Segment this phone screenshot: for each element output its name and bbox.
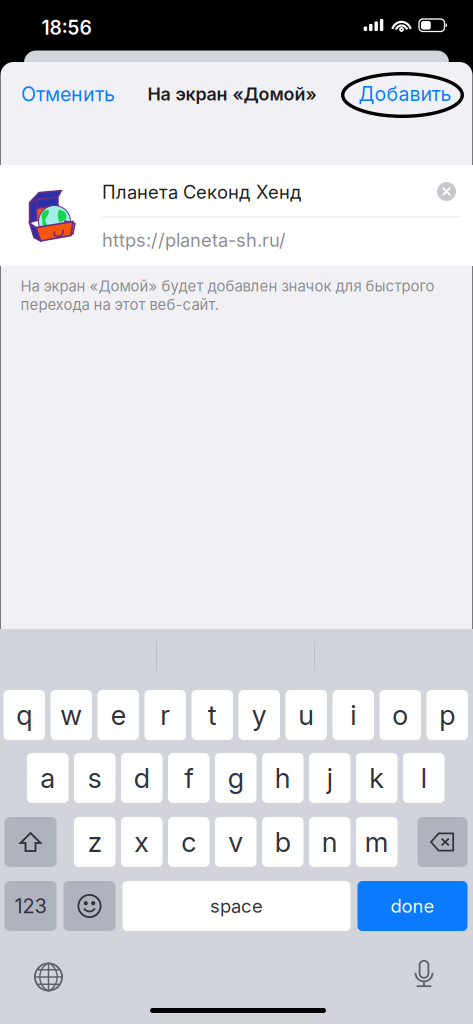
button[interactable]: 123 [4, 881, 56, 931]
staticText: space [210, 895, 263, 917]
button[interactable]: v [215, 817, 256, 867]
button[interactable]: Delete [417, 817, 467, 867]
button[interactable]: g [215, 753, 256, 803]
button[interactable]: r [144, 690, 186, 740]
button[interactable]: a [27, 753, 68, 803]
button[interactable]: o [379, 690, 421, 740]
staticText: h [275, 761, 291, 795]
button[interactable]: Dictation [404, 954, 444, 994]
staticText: l [421, 761, 427, 795]
staticText: u [298, 698, 314, 732]
button[interactable]: s [74, 753, 115, 803]
staticText: g [228, 761, 244, 795]
staticText: y [252, 698, 267, 732]
staticText: p [439, 698, 455, 732]
button[interactable]: Shift [4, 817, 56, 867]
button[interactable]: Отменить [21, 72, 117, 116]
button[interactable]: n [309, 817, 350, 867]
staticText: 123 [14, 894, 46, 918]
button[interactable]: y [238, 690, 280, 740]
button[interactable]: w [50, 690, 92, 740]
button[interactable]: z [74, 817, 115, 867]
button[interactable]: d [121, 753, 162, 803]
staticText: q [16, 698, 32, 732]
staticText: На экран «Домой» [147, 83, 316, 105]
staticText: i [350, 698, 356, 732]
staticText: m [365, 825, 389, 859]
staticText: r [160, 698, 170, 732]
button[interactable]: j [309, 753, 350, 803]
button[interactable]: k [356, 753, 397, 803]
staticText: Добавить [358, 82, 451, 106]
staticText: f [184, 761, 193, 795]
staticText: e [111, 698, 126, 732]
button[interactable]: Next keyboard [28, 957, 68, 997]
button[interactable]: Emoji [63, 881, 115, 931]
staticText: d [134, 761, 150, 795]
button[interactable]: x [121, 817, 162, 867]
button[interactable]: space [122, 881, 350, 931]
staticText: n [322, 825, 338, 859]
button[interactable]: u [285, 690, 327, 740]
button[interactable]: l [403, 753, 444, 803]
button[interactable]: e [97, 690, 139, 740]
staticText: https://planeta-sh.ru/ [102, 229, 286, 251]
button[interactable]: done [357, 881, 467, 931]
staticText: done [390, 895, 434, 917]
button[interactable]: m [356, 817, 397, 867]
staticText: c [181, 825, 196, 859]
staticText: a [40, 761, 55, 795]
staticText: s [88, 761, 102, 795]
button[interactable]: h [262, 753, 303, 803]
button[interactable]: t [191, 690, 233, 740]
staticText: 18:56 [41, 16, 91, 39]
staticText: b [275, 825, 291, 859]
staticText: Планета Секонд Хенд [102, 181, 302, 203]
staticText: o [392, 698, 408, 732]
staticText: w [60, 698, 82, 732]
staticText: Отменить [21, 82, 115, 106]
button[interactable]: i [332, 690, 374, 740]
button[interactable]: Очистить [429, 174, 463, 208]
staticText: x [134, 825, 149, 859]
staticText: z [88, 825, 102, 859]
button[interactable]: b [262, 817, 303, 867]
staticText: k [369, 761, 384, 795]
button[interactable]: q [3, 690, 45, 740]
staticText: v [228, 825, 243, 859]
button[interactable]: Добавить [358, 72, 451, 116]
staticText: j [327, 761, 333, 795]
staticText: На экран «Домой» будет добавлен значок д… [20, 277, 434, 314]
staticText: t [208, 698, 217, 732]
button[interactable]: f [168, 753, 209, 803]
button[interactable]: c [168, 817, 209, 867]
button[interactable]: p [426, 690, 468, 740]
